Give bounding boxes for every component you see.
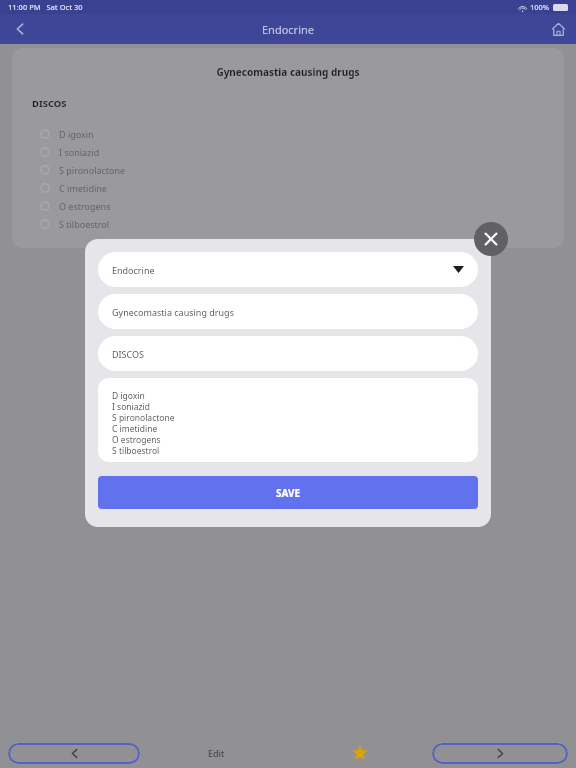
staticText: Gynecomastia causing drugs [112,306,234,318]
staticText: 11:00 PM Sat Oct 30 [8,2,83,12]
button[interactable]: DISCOS [98,336,478,371]
button[interactable]: D igoxin [12,125,564,143]
button[interactable]: Endocrine [98,252,478,287]
staticText: C imetidine [59,182,107,194]
staticText: DISCOS [112,348,145,360]
button[interactable]: Back [0,14,40,44]
button[interactable]: D igoxin [98,378,478,462]
button[interactable]: O estrogens [12,197,564,215]
button[interactable]: Next [432,743,568,764]
staticText: Edit [208,747,225,759]
staticText: S pironolactone [59,164,126,176]
button[interactable]: Gynecomastia causing drugs [98,294,478,329]
button[interactable]: Close [474,222,508,256]
staticText: O estrogens [59,200,111,212]
staticText: S pironolactone [112,412,175,423]
staticText: O estrogens [112,434,161,445]
button[interactable]: Home [540,14,576,44]
staticText: I soniazid [59,146,100,158]
staticText: Gynecomastia causing drugs [12,65,564,79]
staticText: Endocrine [262,22,314,37]
button[interactable]: I soniazid [12,143,564,161]
button[interactable]: Previous [8,743,140,764]
staticText: D igoxin [59,128,94,140]
button[interactable]: C imetidine [12,179,564,197]
staticText: DISCOS [32,97,67,110]
staticText: I soniazid [112,401,150,412]
staticText: Endocrine [112,264,155,276]
button[interactable]: S tilboestrol [12,215,564,233]
staticText: D igoxin [112,390,145,401]
staticText: S tilboestrol [59,218,110,230]
staticText: 100% [530,2,550,12]
staticText: SAVE [276,486,301,500]
button[interactable]: SAVE [98,476,478,509]
button[interactable]: Edit [190,742,242,764]
staticText: C imetidine [112,423,158,434]
staticText: S tilboestrol [112,445,160,456]
button[interactable]: S pironolactone [12,161,564,179]
button[interactable]: Favourite [344,738,376,768]
